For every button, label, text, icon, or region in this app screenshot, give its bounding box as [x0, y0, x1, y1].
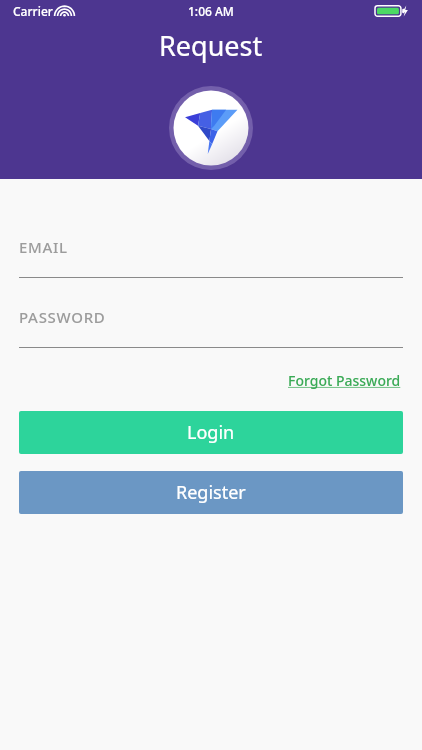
- other: Wi-Fi: [57, 5, 72, 17]
- button[interactable]: Forgot Password: [286, 368, 403, 393]
- staticText: Request: [159, 27, 263, 64]
- staticText: EMAIL: [19, 237, 68, 257]
- staticText: Login: [187, 420, 235, 445]
- button[interactable]: Login: [19, 411, 403, 454]
- staticText: Forgot Password: [288, 371, 401, 390]
- other: App logo: [169, 86, 253, 170]
- staticText: PASSWORD: [19, 307, 106, 327]
- staticText: 1:06 AM: [188, 3, 234, 19]
- staticText: Carrier: [13, 3, 53, 19]
- staticText: Register: [176, 480, 246, 505]
- button[interactable]: PASSWORD: [0, 307, 422, 348]
- button[interactable]: Register: [19, 471, 403, 514]
- button[interactable]: EMAIL: [0, 237, 422, 278]
- other: Battery charging: [375, 4, 411, 18]
